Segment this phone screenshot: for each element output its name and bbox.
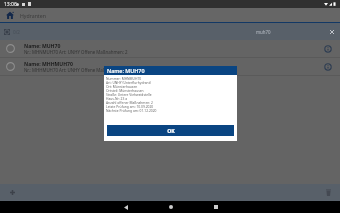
button[interactable]: Recents <box>193 201 238 213</box>
staticText: Letzte Prüfung am: 10.09.2020 <box>106 104 154 108</box>
staticText: OK <box>167 127 175 134</box>
staticText: 0/2 <box>13 29 20 35</box>
button[interactable]: Info <box>323 62 333 72</box>
staticText: Haus-Nr: 23 a <box>106 96 128 100</box>
button[interactable]: Clear search <box>327 27 336 36</box>
button[interactable]: Home <box>148 201 193 213</box>
button[interactable]: Home <box>6 11 14 19</box>
staticText: 13:06 <box>4 1 17 8</box>
staticText: Straße: Untere Viehweidstelle <box>106 92 152 96</box>
staticText: Name: MUH70 <box>107 67 145 74</box>
staticText: Nr.: MHHMUH70 Art: UNHY Offene Maßnahmen… <box>24 67 128 72</box>
button[interactable]: Delete <box>323 187 334 198</box>
staticText: Name: MUH70 <box>24 43 61 48</box>
staticText: muh70 <box>256 29 271 35</box>
staticText: Ort: Münsterhausen <box>106 84 138 88</box>
staticText: Ortsteil: Münsterhausen <box>106 88 144 92</box>
button[interactable]: Info <box>323 44 333 54</box>
button[interactable]: Add <box>7 187 18 198</box>
button[interactable]: Back <box>103 201 148 213</box>
staticText: Anzahl offener Maßnahmen: 2 <box>106 100 153 104</box>
button[interactable]: Name: MHHMUH70 <box>0 58 340 75</box>
staticText: Art: UNHY (Unterflurhydrant) <box>106 80 151 84</box>
button[interactable]: Name: MUH70 <box>0 40 340 57</box>
staticText: Nächste Prüfung am: 01.12.2020 <box>106 108 157 112</box>
staticText: Nr.: MHNMUH70 Art: UNHY Offene Maßnahmen… <box>24 49 128 54</box>
button[interactable]: OK <box>107 125 234 136</box>
staticText: Nummer: MHNMUH70 <box>106 76 142 80</box>
staticText: Name: MHHMUH70 <box>24 61 73 66</box>
staticText: Hydranten <box>20 12 46 19</box>
